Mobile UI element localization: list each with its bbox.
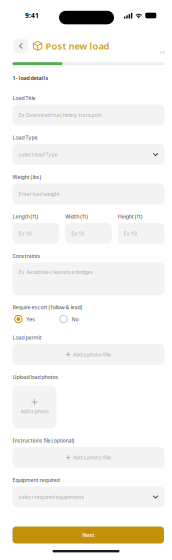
staticText: Post new load [46,40,110,52]
staticText: Require escort (follow & lead) [12,303,82,311]
staticText: No [71,316,78,323]
button[interactable]: Add a photo /file [12,447,164,468]
button[interactable]: Next [12,526,164,543]
staticText: Ex Oversized machinery transport [18,111,101,118]
staticText: select load Type [18,151,57,158]
staticText: 9:41 [25,11,39,20]
button[interactable]: Enter load weight [12,183,164,204]
staticText: Width (ft) [65,213,88,220]
staticText: Load permit [12,334,41,341]
button[interactable]: Ex Avoid low-clearance bridges [12,262,164,295]
staticText: Enter load weight [18,190,59,197]
button[interactable]: select required equipments [12,486,164,507]
staticText: Constraints [12,252,40,259]
button[interactable]: Ex Oversized machinery transport [12,104,164,125]
staticText: Weight (lbs) [12,173,41,180]
staticText: Instructions file (optional) [12,437,74,444]
staticText: 1- load details [12,74,48,81]
staticText: Ex 10 [124,230,137,237]
button[interactable]: Add a photo [12,385,56,428]
staticText: Ex 10 [71,230,84,237]
staticText: 1/3 [159,50,164,55]
button[interactable]: Ex 10 [118,223,164,244]
button[interactable]: No [60,315,78,323]
staticText: Equipment required [12,476,59,483]
staticText: Ex 10 [18,230,31,237]
staticText: Add a photo [20,408,48,415]
button[interactable]: select load Type [12,144,164,165]
staticText: Load Title [12,94,35,101]
button[interactable]: Back [13,39,28,53]
staticText: Next [82,531,94,539]
staticText: Length (ft) [12,213,38,220]
staticText: Yes [26,316,35,323]
staticText: select required equipments [18,493,84,500]
staticText: Load Type [12,134,37,141]
button[interactable]: Add a photo /file [12,344,164,365]
button[interactable]: Ex 10 [65,223,112,244]
staticText: Add a photo /file [73,454,111,461]
button[interactable]: Yes [15,315,35,323]
staticText: Upload load photos [12,373,58,380]
button[interactable]: Ex 10 [12,223,59,244]
staticText: Height (ft) [118,213,143,220]
staticText: Add a photo /file [73,351,111,358]
staticText: Ex Avoid low-clearance bridges [18,268,93,275]
